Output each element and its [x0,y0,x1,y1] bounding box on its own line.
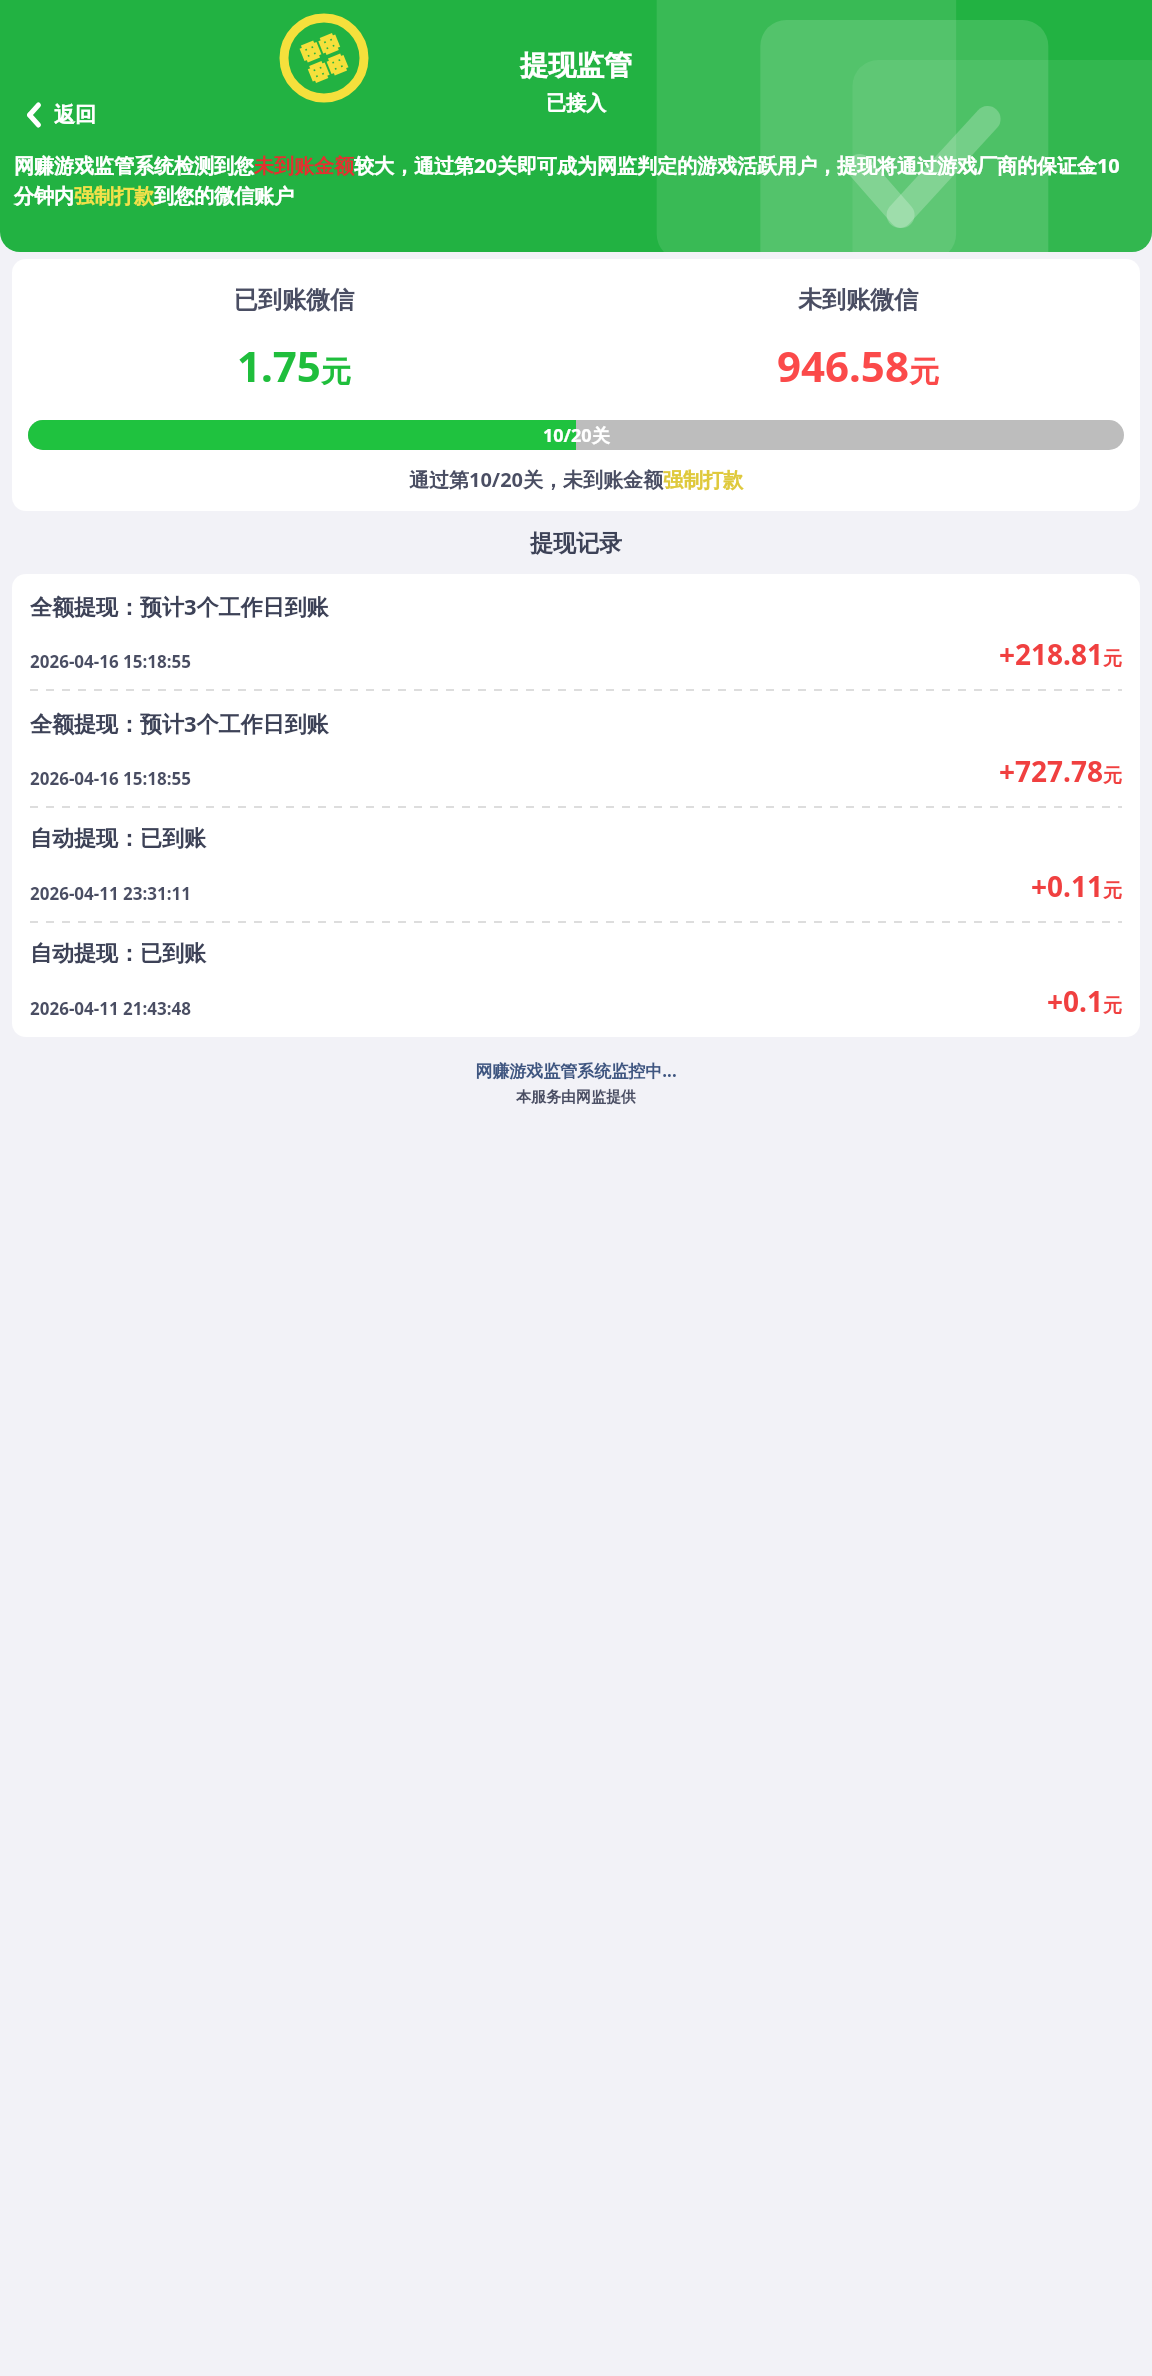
button[interactable]: 返回 [16,96,106,134]
staticText: 未到账微信 [798,285,918,315]
staticText: +0.11元 [1031,867,1122,905]
staticText: 网赚游戏监管系统检测到您未到账金额较大，通过第20关即可成为网监判定的游戏活跃用… [14,152,1138,209]
staticText: 自动提现：已到账 [30,940,206,968]
staticText: 自动提现：已到账 [30,825,206,853]
staticText: +218.81元 [999,635,1122,673]
staticText: 已接入 [546,91,606,116]
staticText: 2026-04-11 23:31:11 [30,882,191,905]
staticText: 全额提现：预计3个工作日到账 [30,708,329,738]
staticText: 返回 [54,102,96,128]
staticText: 网赚游戏监管系统监控中... [0,1059,1152,1082]
staticText: 提现记录 [0,529,1152,558]
button[interactable]: 自动提现：已到账 [30,923,1122,1037]
button[interactable]: 全额提现：预计3个工作日到账 [30,691,1122,807]
staticText: +727.78元 [999,752,1122,790]
staticText: 全额提现：预计3个工作日到账 [30,591,329,621]
staticText: 10/20关 [543,423,610,448]
staticText: 本服务由网监提供 [0,1088,1152,1107]
staticText: 2026-04-11 21:43:48 [30,997,191,1020]
staticText: 946.58元 [777,337,939,394]
staticText: 2026-04-16 15:18:55 [30,650,191,673]
staticText: 已到账微信 [234,285,354,315]
button[interactable]: 全额提现：预计3个工作日到账 [30,574,1122,690]
button[interactable]: 自动提现：已到账 [30,808,1122,922]
staticText: 1.75元 [237,337,351,394]
staticText: 2026-04-16 15:18:55 [30,767,191,790]
staticText: 通过第10/20关，未到账金额强制打款 [12,466,1140,493]
staticText: +0.1元 [1047,982,1122,1020]
staticText: 提现监管 [520,48,632,83]
